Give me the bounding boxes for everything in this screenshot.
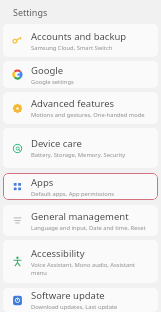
button[interactable]: Apps bbox=[3, 173, 158, 200]
staticText: Software update bbox=[31, 289, 105, 302]
button[interactable]: Software update bbox=[3, 288, 158, 312]
button[interactable]: Accounts and backup bbox=[3, 24, 158, 57]
button[interactable]: Accessibility bbox=[3, 240, 158, 283]
staticText: Accessibility bbox=[31, 247, 85, 260]
button[interactable]: Device care bbox=[3, 128, 158, 168]
staticText: General management bbox=[31, 210, 129, 223]
staticText: Google bbox=[31, 64, 64, 77]
staticText: Google settings bbox=[31, 78, 74, 86]
staticText: Apps bbox=[31, 176, 54, 189]
button[interactable]: General management bbox=[3, 205, 158, 236]
button[interactable]: Advanced features bbox=[3, 92, 158, 124]
staticText: Settings bbox=[13, 6, 48, 18]
staticText: Battery, Storage, Memory, Security bbox=[31, 151, 126, 159]
staticText: Accounts and backup bbox=[31, 30, 127, 43]
staticText: Samsung Cloud, Smart Switch bbox=[31, 44, 113, 52]
staticText: Language and input, Date and time, Reset bbox=[31, 224, 146, 232]
staticText: Default apps, App permissions bbox=[31, 190, 115, 198]
staticText: Motions and gestures, One-handed mode bbox=[31, 111, 145, 119]
staticText: Device care bbox=[31, 137, 82, 150]
button[interactable]: Google bbox=[3, 61, 158, 88]
staticText: Advanced features bbox=[31, 97, 115, 110]
staticText: Voice Assistant, Mono audio, Assistant m… bbox=[31, 261, 152, 277]
staticText: Download updates, Last update bbox=[31, 303, 118, 311]
